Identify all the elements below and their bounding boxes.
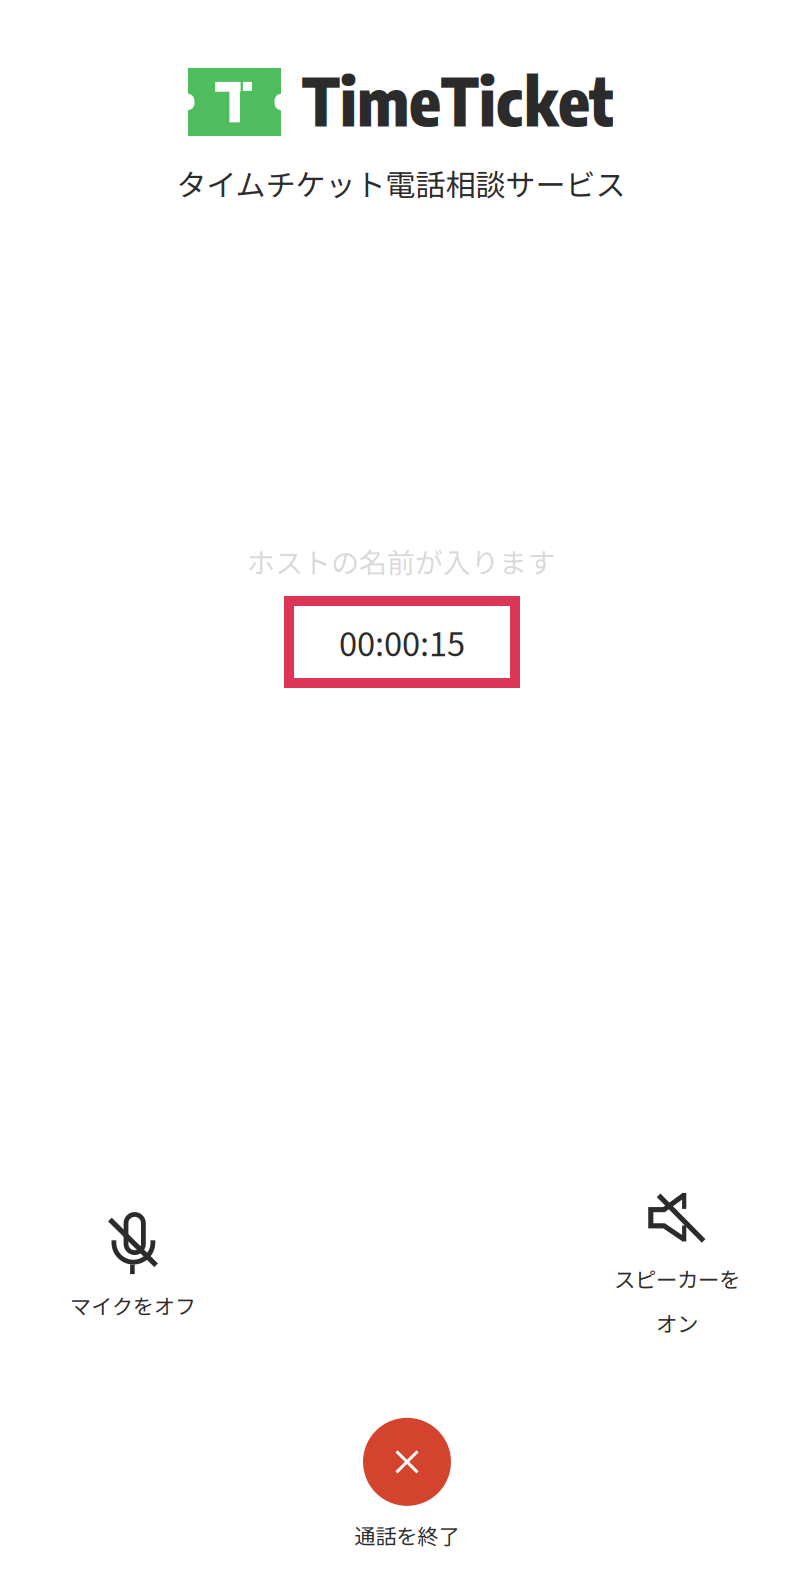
- staticText: 00:00:15: [339, 618, 465, 666]
- button[interactable]: 通話を終了: [354, 1418, 459, 1550]
- staticText: 通話を終了: [354, 1520, 459, 1550]
- button[interactable]: スピーカーを: [614, 1192, 740, 1338]
- staticText: タイムチケット電話相談サービス: [176, 161, 625, 205]
- staticText: TimeTicket: [302, 59, 614, 141]
- staticText: マイクをオフ: [70, 1290, 196, 1320]
- button[interactable]: マイクをオフ: [70, 1212, 196, 1320]
- staticText: ホストの名前が入ります: [247, 541, 555, 581]
- staticText: スピーカーを: [614, 1263, 740, 1294]
- staticText: オン: [656, 1307, 698, 1338]
